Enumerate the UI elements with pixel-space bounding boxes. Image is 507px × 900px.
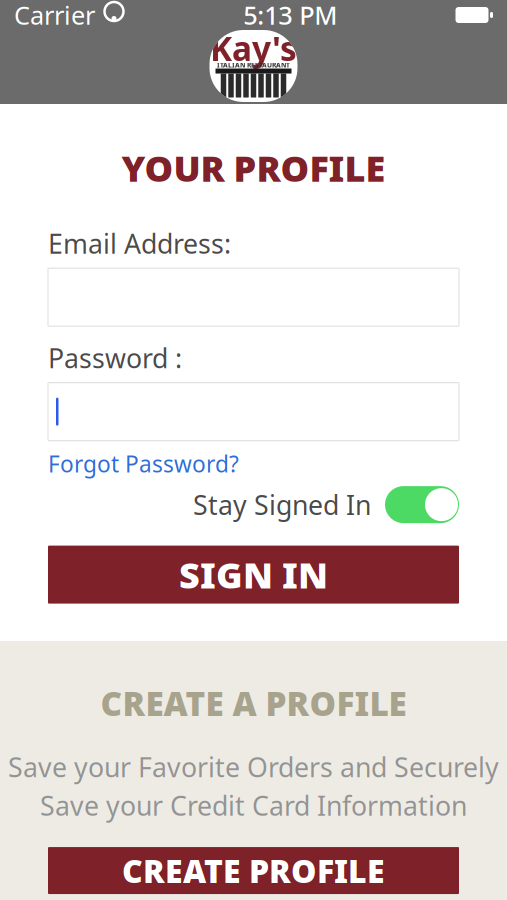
staticText: YOUR PROFILE	[121, 144, 385, 192]
staticText: CREATE A PROFILE	[100, 681, 406, 725]
button[interactable]: Forgot Password?	[48, 451, 239, 477]
button[interactable]: Stay Signed In	[48, 485, 459, 525]
staticText: Carrier	[14, 0, 95, 32]
button[interactable]: CREATE PROFILE	[48, 847, 459, 894]
staticText: Save your Favorite Orders and Securely	[8, 749, 499, 785]
staticText: Forgot Password?	[48, 449, 239, 479]
staticText: Save your Credit Card Information	[40, 788, 467, 823]
staticText: Kay's	[210, 26, 297, 70]
staticText: Password :	[48, 340, 182, 376]
staticText: ITALIAN RESTAURANT	[217, 61, 290, 69]
staticText: CREATE PROFILE	[122, 849, 385, 892]
button[interactable]: SIGN IN	[48, 546, 459, 604]
staticText: Stay Signed In	[193, 487, 371, 522]
staticText: Email Address:	[48, 226, 231, 261]
staticText: 5:13 PM	[243, 0, 337, 32]
staticText: SIGN IN	[179, 551, 328, 598]
